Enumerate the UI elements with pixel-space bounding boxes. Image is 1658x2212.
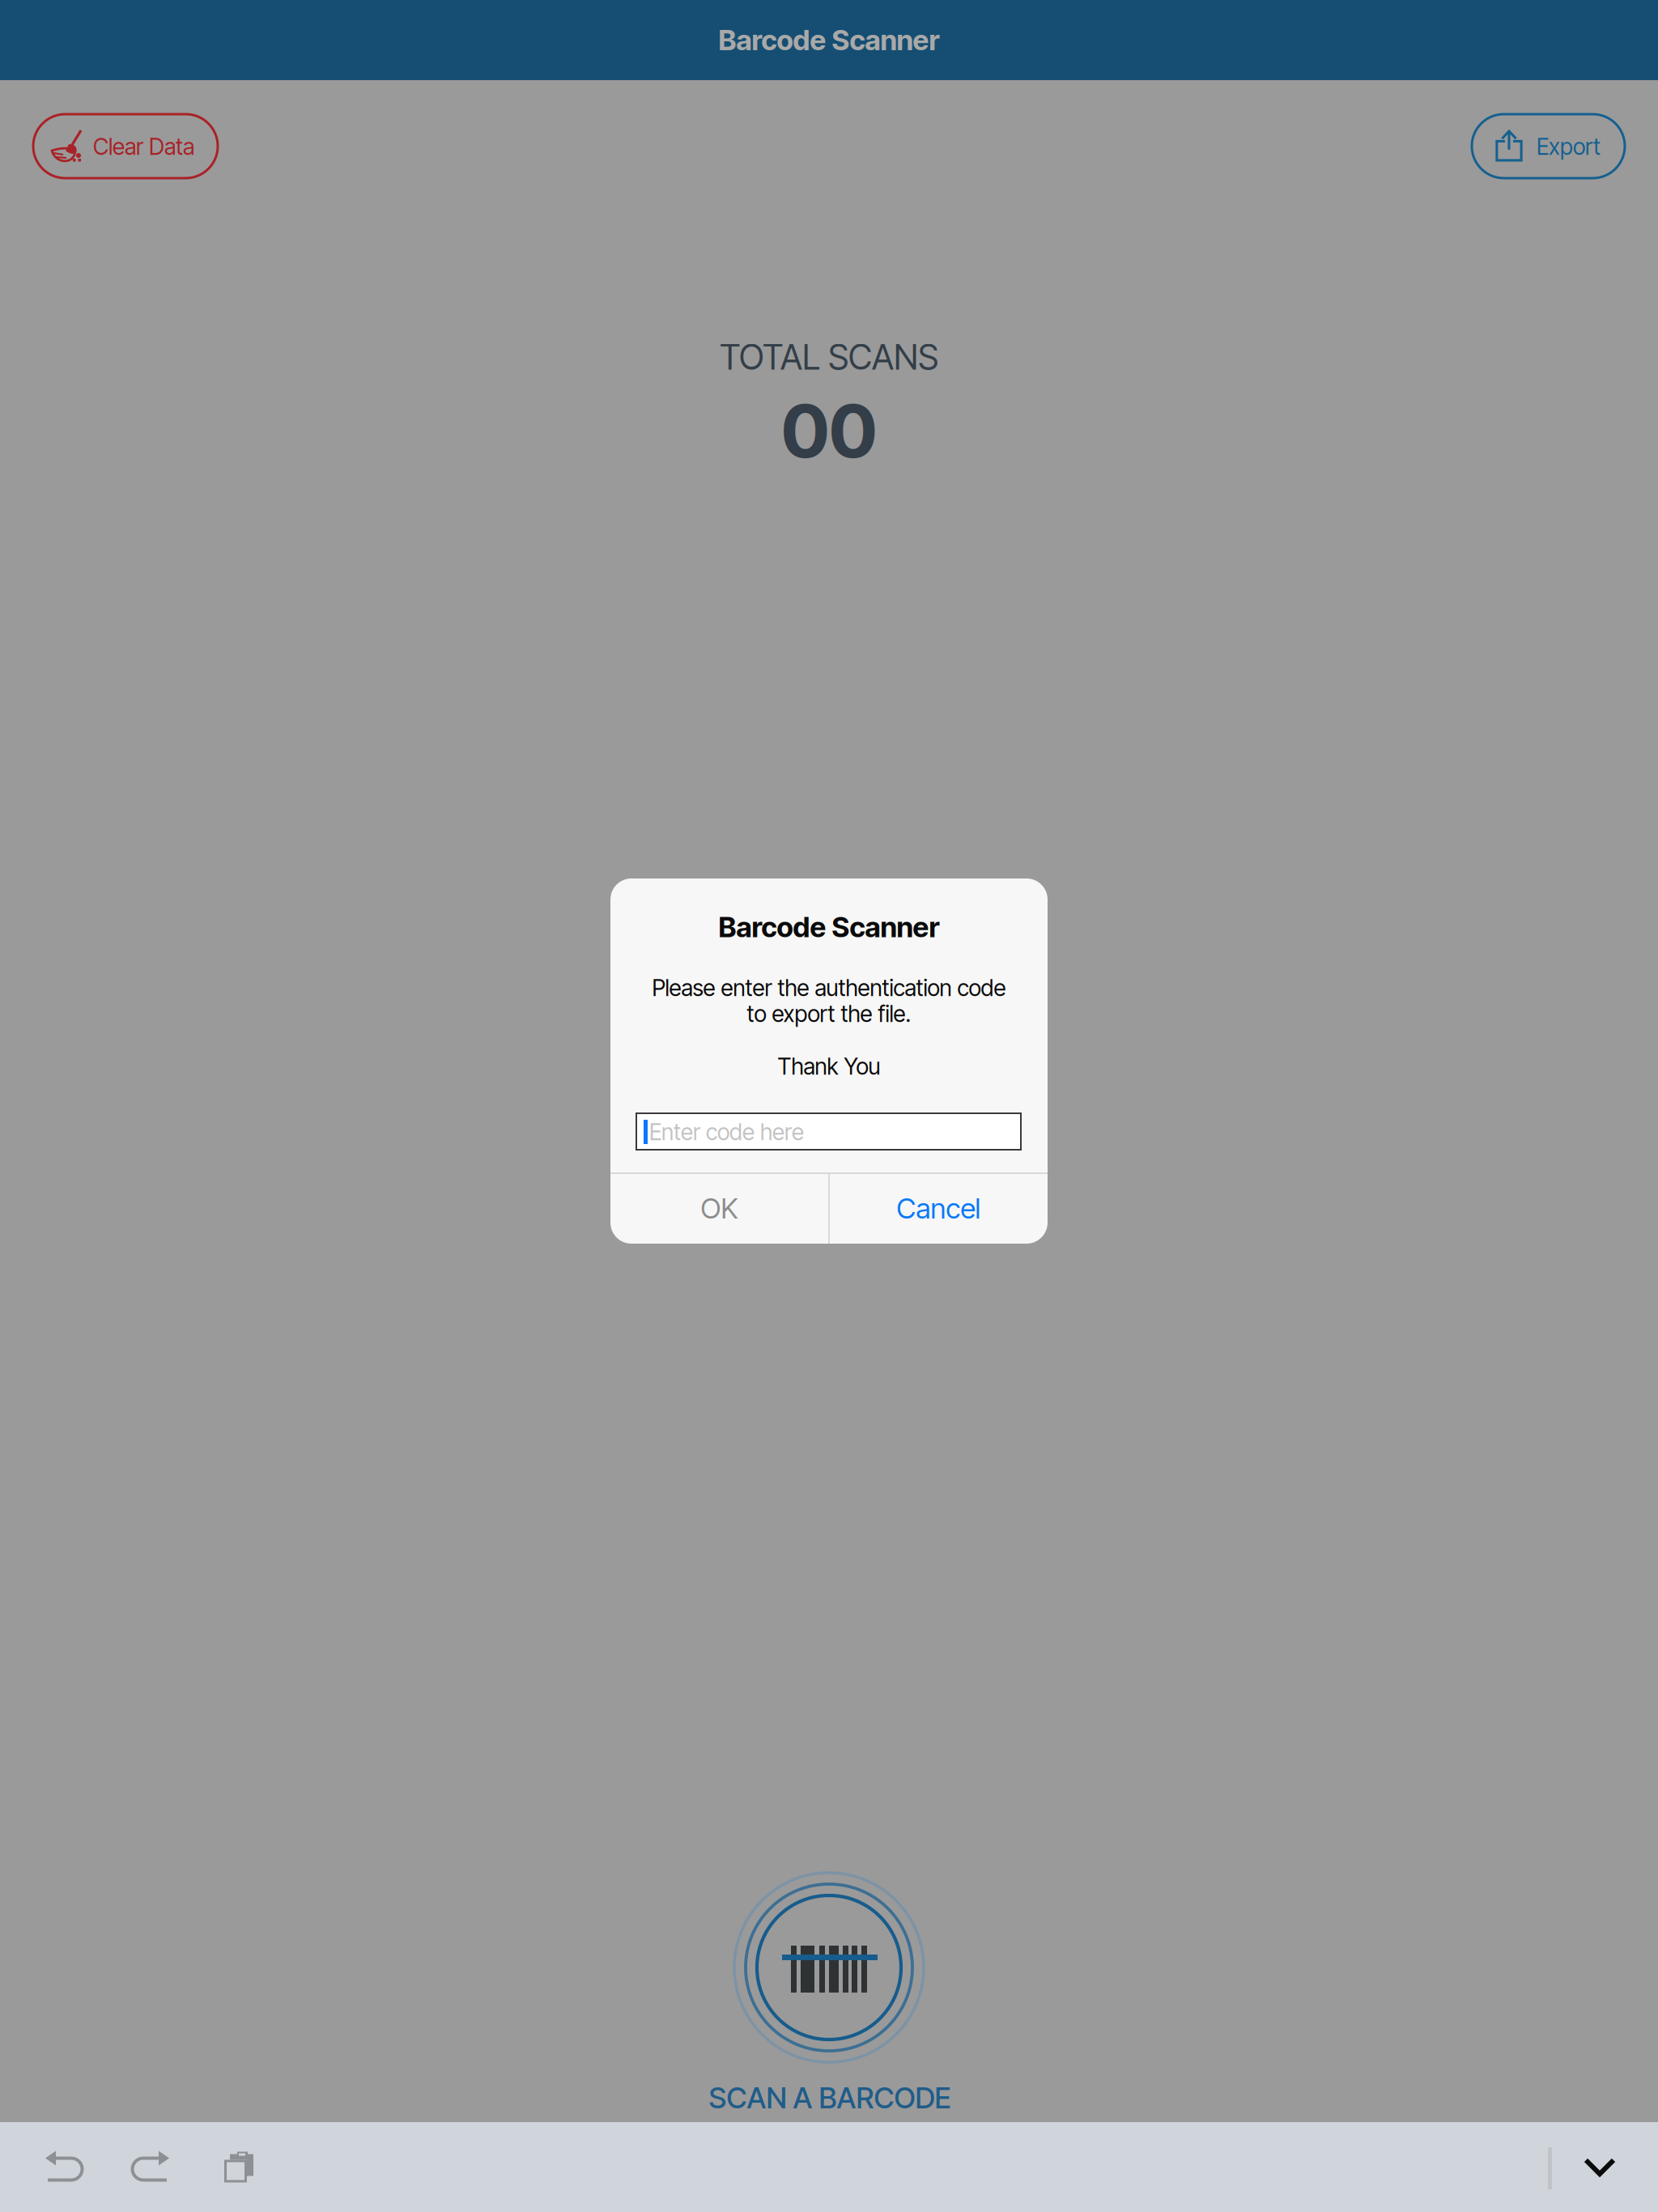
button[interactable]: SCAN A BARCODE xyxy=(704,1872,955,2114)
button[interactable]: Hide keyboard xyxy=(1559,2122,1640,2212)
button[interactable]: Export xyxy=(1472,114,1625,178)
staticText: Please enter the authentication code xyxy=(652,974,1006,1002)
button[interactable]: OK xyxy=(610,1173,828,1244)
staticText: SCAN A BARCODE xyxy=(709,2080,951,2115)
button[interactable]: Redo xyxy=(112,2122,189,2212)
button[interactable]: Cancel xyxy=(830,1173,1048,1244)
button[interactable]: Clear Data xyxy=(33,114,218,178)
staticText: 00 xyxy=(781,386,877,475)
staticText: Thank You xyxy=(778,1053,880,1080)
staticText: Export xyxy=(1537,133,1601,160)
staticText: TOTAL SCANS xyxy=(720,336,938,378)
staticText: Cancel xyxy=(897,1191,981,1225)
staticText: OK xyxy=(701,1191,738,1225)
button[interactable]: Undo xyxy=(25,2122,103,2212)
staticText: Barcode Scanner xyxy=(718,23,940,57)
button[interactable]: Paste xyxy=(200,2122,278,2212)
staticText: Barcode Scanner xyxy=(718,910,940,944)
staticText: Enter code here xyxy=(649,1118,804,1146)
staticText: to export the file. xyxy=(747,1000,911,1027)
staticText: Clear Data xyxy=(93,133,194,160)
